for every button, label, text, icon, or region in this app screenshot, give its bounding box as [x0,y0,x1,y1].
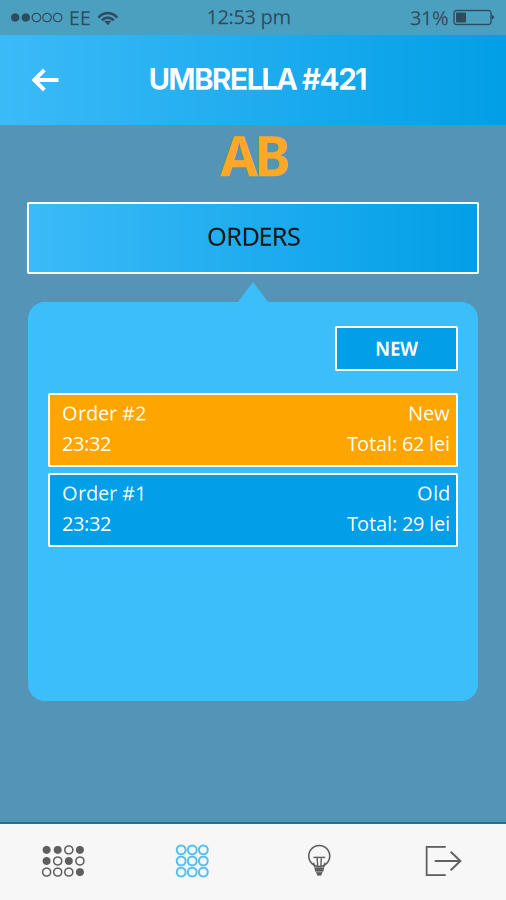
staticText: Old [417,479,450,506]
staticText: EE [69,4,91,31]
staticText: Order #2 [62,399,146,426]
button[interactable]: ORDERS [28,203,478,273]
staticText: AB [220,119,290,191]
staticText: Total: 29 lei [347,510,450,537]
staticText: Order #1 [62,479,146,506]
staticText: NEW [375,336,418,361]
staticText: Total: 62 lei [347,430,450,457]
button[interactable]: Tables [0,822,126,900]
button[interactable]: Order #2 [49,394,457,466]
button[interactable]: Hints [253,822,379,900]
button[interactable]: NEW [336,327,457,370]
staticText: 23:32 [62,430,111,457]
button[interactable]: Log out [379,822,506,900]
button[interactable]: Back [0,35,90,125]
staticText: New [408,399,450,426]
button[interactable]: Order #1 [49,474,457,546]
staticText: ORDERS [207,219,301,253]
staticText: UMBRELLA #421 [149,61,367,97]
button[interactable]: Orders [126,822,253,900]
staticText: 31% [410,4,449,31]
staticText: 12:53 pm [206,3,291,30]
staticText: 23:32 [62,510,111,537]
